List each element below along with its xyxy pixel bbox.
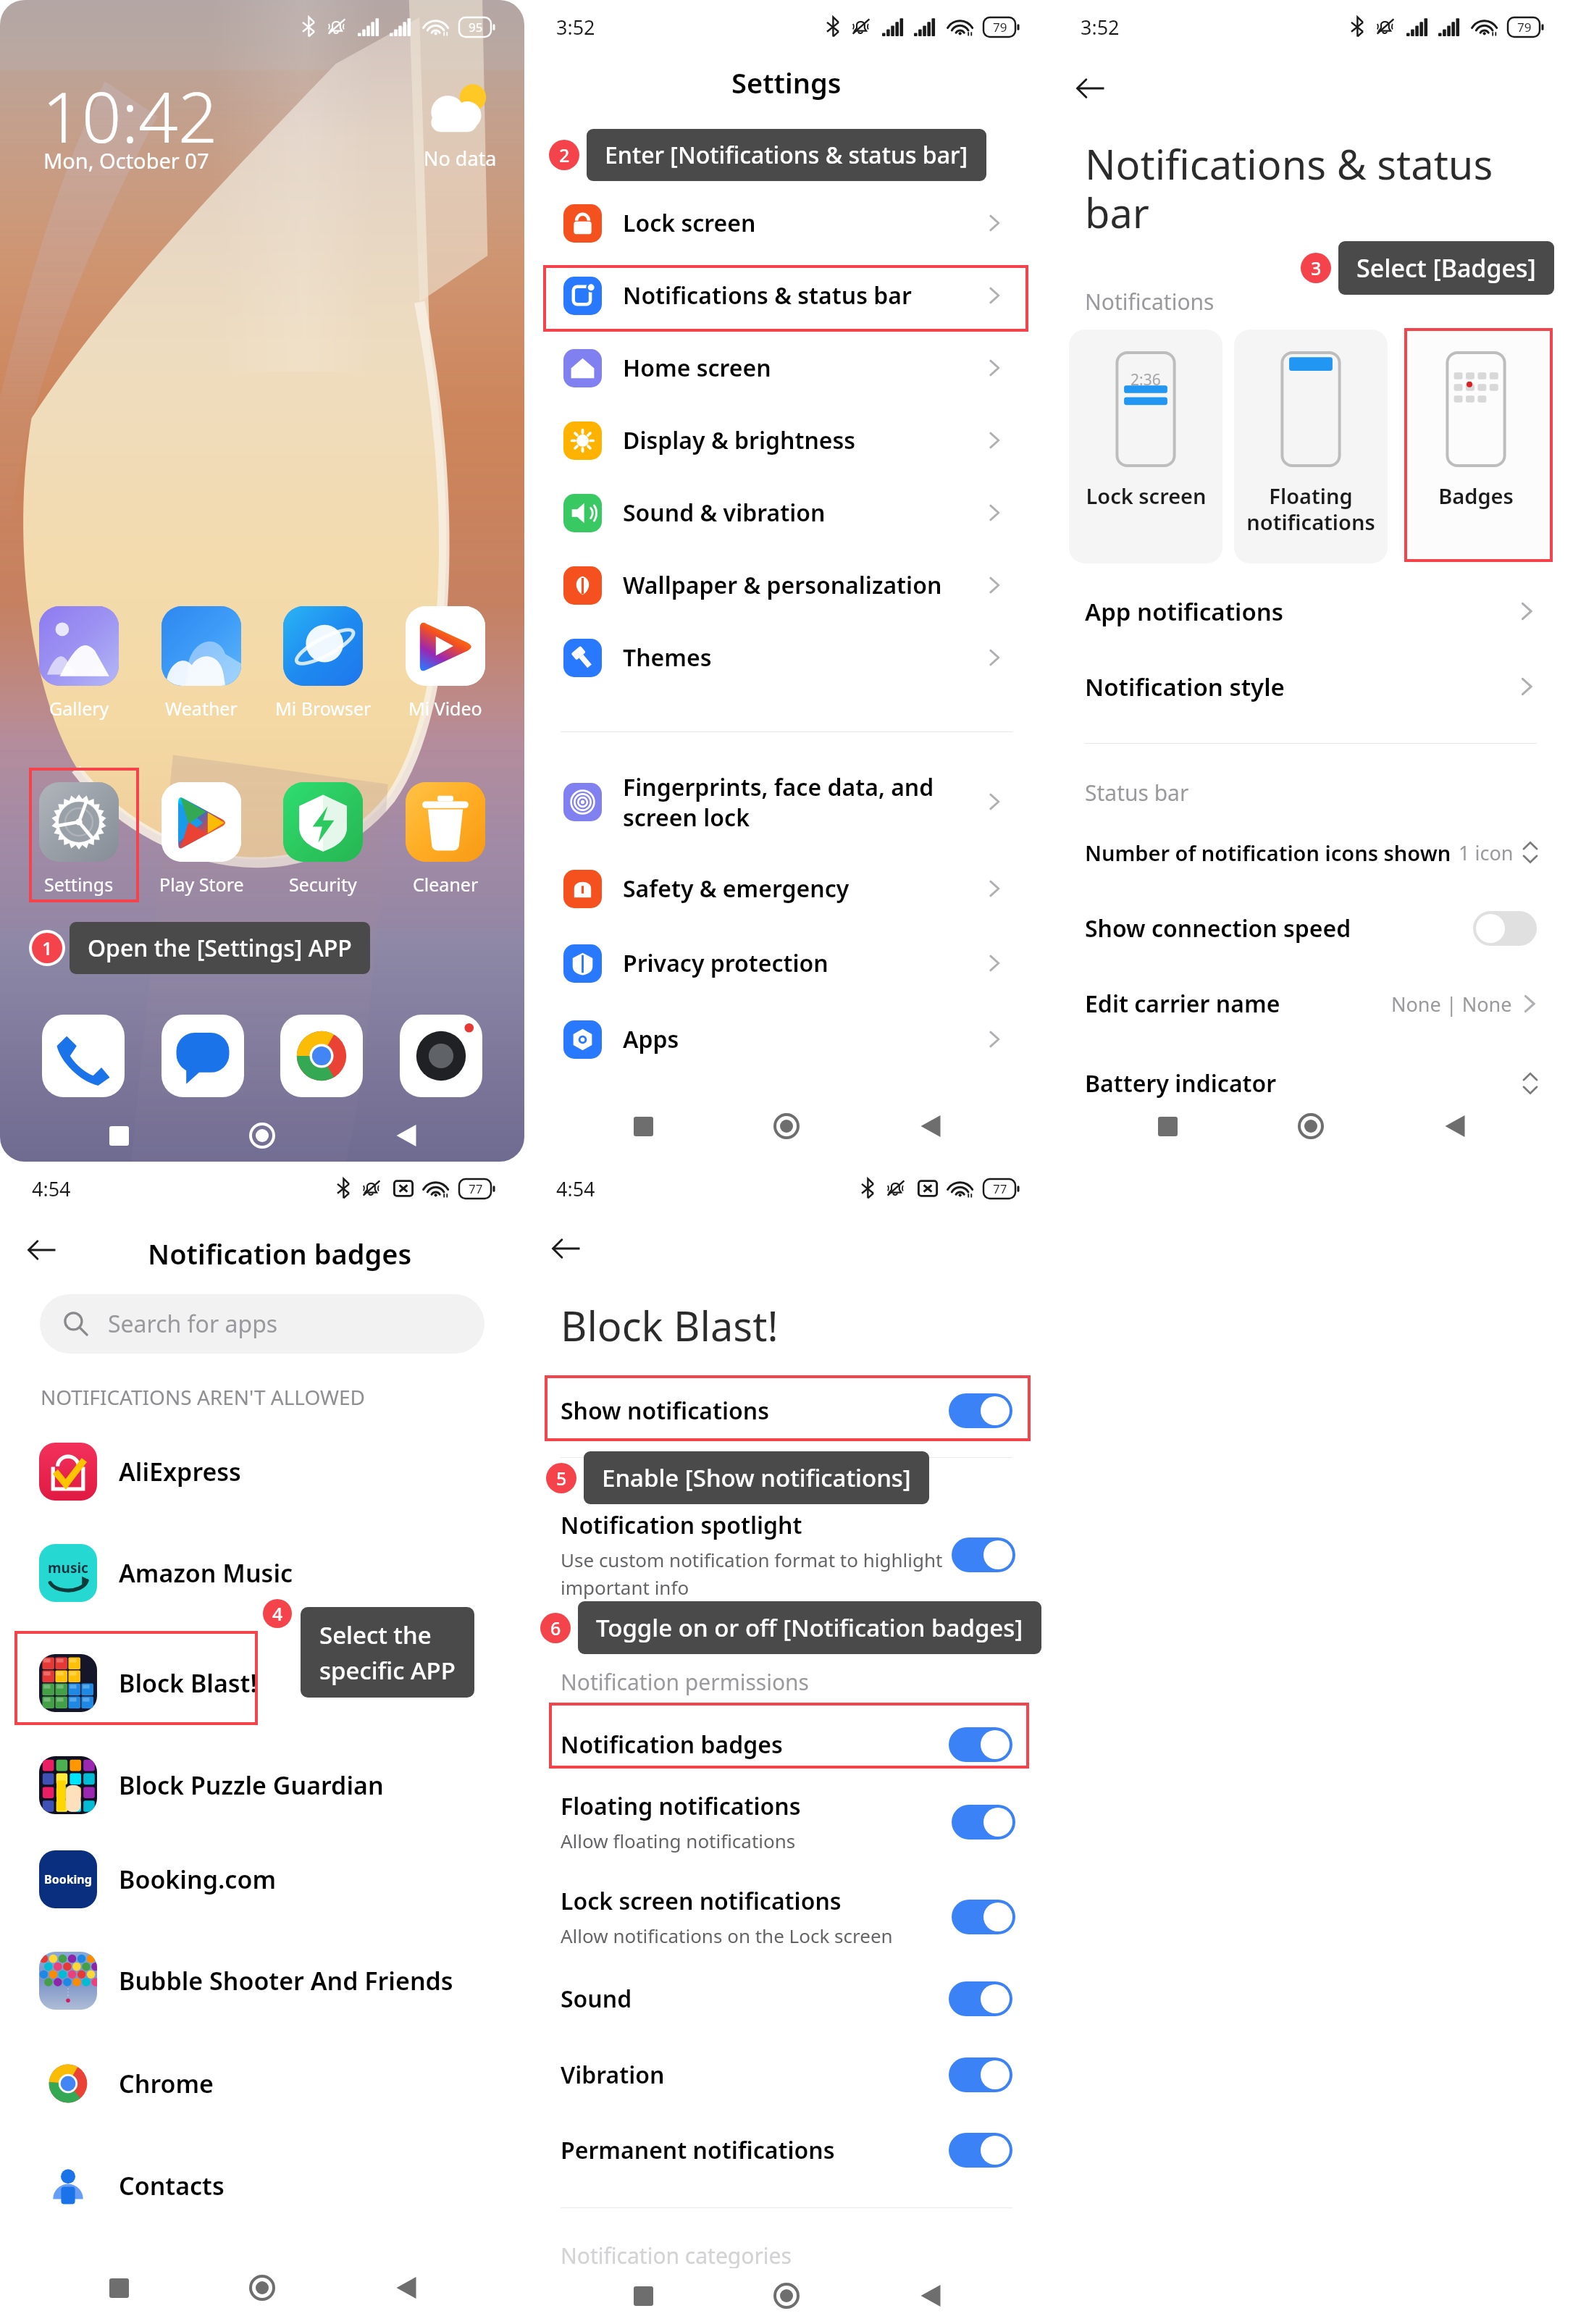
button[interactable]: Privacy protection <box>524 927 1049 999</box>
staticText: Notification style <box>1085 671 1285 703</box>
button[interactable]: Recents <box>618 1101 668 1151</box>
button[interactable]: Themes <box>524 621 1049 694</box>
button[interactable]: Sound on <box>949 1981 1012 2016</box>
button[interactable]: Permanent notifications on <box>949 2133 1012 2168</box>
staticText: Edit carrier name <box>1085 988 1280 1020</box>
button[interactable]: Notification style <box>1049 650 1573 723</box>
staticText: 4 <box>272 1601 283 1626</box>
button[interactable]: Fingerprints, face data, and screen lock <box>524 765 1049 838</box>
button[interactable]: Mi Browser <box>269 606 377 721</box>
button[interactable]: Number of notification icons shown <box>1049 818 1573 887</box>
button[interactable]: Chrome <box>0 2033 524 2134</box>
button[interactable]: Recents <box>618 2270 668 2321</box>
staticText: Mi Video <box>408 696 482 721</box>
staticText: 3:52 <box>556 14 595 41</box>
button[interactable]: Settings <box>25 782 133 897</box>
button[interactable]: Bubble Shooter And Friends <box>0 1930 524 2031</box>
button[interactable]: Back <box>905 2270 956 2321</box>
button[interactable]: Show notifications <box>524 1376 1049 1446</box>
staticText: Notification categories <box>561 2241 792 2270</box>
button[interactable]: Cleaner <box>391 782 500 897</box>
button[interactable]: Search for apps <box>40 1294 485 1354</box>
button[interactable]: Home <box>237 2262 288 2313</box>
button[interactable]: Floating notifications <box>524 1790 1049 1853</box>
button[interactable]: Weather <box>147 606 256 721</box>
staticText: Battery indicator <box>1085 1067 1277 1099</box>
button[interactable]: Wallpaper & personalization <box>524 549 1049 621</box>
staticText: 77 <box>993 1180 1007 1197</box>
button[interactable]: Notification badges <box>524 1710 1049 1779</box>
staticText: Select [Badges] <box>1356 251 1536 285</box>
staticText: Bubble Shooter And Friends <box>119 1964 453 1997</box>
button[interactable]: Home <box>237 1110 288 1161</box>
button[interactable]: music <box>0 1522 524 1624</box>
button[interactable]: Display & brightness <box>524 404 1049 477</box>
button[interactable]: Lock screen <box>1069 330 1222 563</box>
button[interactable]: Apps <box>524 1003 1049 1075</box>
button[interactable]: Show notifications on <box>949 1393 1012 1428</box>
button[interactable]: Battery indicator <box>1049 1049 1573 1118</box>
button[interactable]: Back <box>1075 72 1107 104</box>
staticText: Wallpaper & personalization <box>623 569 942 601</box>
button[interactable]: Floating notifications on <box>952 1805 1015 1840</box>
button[interactable]: Lock screen <box>524 187 1049 259</box>
button[interactable]: Recents <box>93 2262 144 2313</box>
button[interactable]: Notification spotlight <box>524 1509 1049 1600</box>
staticText: Allow notifications on the Lock screen <box>561 1923 893 1948</box>
button[interactable]: Edit carrier name <box>1049 969 1573 1039</box>
button[interactable]: Block Blast! <box>0 1632 524 1734</box>
button[interactable]: Home <box>761 2270 812 2321</box>
button[interactable]: Back <box>550 1233 582 1264</box>
button[interactable]: Security <box>269 782 377 897</box>
button[interactable]: Back <box>381 1110 432 1161</box>
button[interactable]: Block Puzzle Guardian <box>0 1734 524 1836</box>
button[interactable]: Notification spotlight on <box>952 1538 1015 1572</box>
staticText: Gallery <box>49 696 109 721</box>
button[interactable]: Messages <box>162 1015 244 1097</box>
button[interactable]: Home <box>761 1101 812 1151</box>
staticText: Block Blast! <box>561 1298 779 1353</box>
button[interactable]: Camera <box>400 1015 482 1097</box>
button[interactable]: Mi Video <box>391 606 500 721</box>
button[interactable]: Recents <box>1142 1101 1193 1151</box>
button[interactable]: Back <box>1430 1101 1480 1151</box>
button[interactable]: Chrome <box>280 1015 363 1097</box>
button[interactable]: Gallery <box>25 606 133 721</box>
button[interactable]: Sound & vibration <box>524 477 1049 549</box>
staticText: Notifications <box>1085 287 1215 316</box>
button[interactable]: Back <box>26 1234 58 1266</box>
button[interactable]: Permanent notifications <box>524 2115 1049 2185</box>
button[interactable]: Show connection speed <box>1049 894 1573 963</box>
button[interactable]: Lock screen notifications <box>524 1885 1049 1948</box>
button[interactable]: Home screen <box>524 332 1049 404</box>
staticText: Sound & vibration <box>623 497 826 529</box>
button[interactable]: Vibration on <box>949 2057 1012 2092</box>
button[interactable]: Notification badges on <box>949 1727 1012 1762</box>
button[interactable]: Show connection speed off <box>1473 911 1537 946</box>
staticText: Weather <box>165 696 238 721</box>
button[interactable]: Vibration <box>524 2040 1049 2110</box>
button[interactable]: Sound <box>524 1964 1049 2034</box>
button[interactable]: Safety & emergency <box>524 852 1049 925</box>
staticText: Show connection speed <box>1085 913 1351 944</box>
button[interactable]: Phone <box>42 1015 125 1097</box>
button[interactable]: AliExpress <box>0 1421 524 1522</box>
button[interactable]: Notifications & status bar <box>524 259 1049 332</box>
button[interactable]: Contacts <box>0 2135 524 2236</box>
button[interactable]: Floating notifications <box>1234 330 1388 563</box>
staticText: Home screen <box>623 352 771 384</box>
button[interactable]: Home <box>1285 1101 1336 1151</box>
button[interactable]: Back <box>381 2262 432 2313</box>
staticText: Open the [Settings] APP <box>88 932 352 964</box>
button[interactable]: Badges <box>1399 330 1553 563</box>
button[interactable]: Play Store <box>147 782 256 897</box>
button[interactable]: Recents <box>93 1110 144 1161</box>
button[interactable]: App notifications <box>1049 574 1573 648</box>
button[interactable]: Booking <box>0 1829 524 1930</box>
staticText: Privacy protection <box>623 947 829 979</box>
button[interactable]: Lock screen notifications on <box>952 1900 1015 1934</box>
staticText: 77 <box>469 1180 483 1197</box>
button[interactable]: Back <box>905 1101 956 1151</box>
staticText: Mon, October 07 <box>43 146 209 175</box>
staticText: None | None <box>1391 991 1512 1018</box>
